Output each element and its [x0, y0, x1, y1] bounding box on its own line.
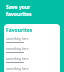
staticText: something here	[6, 47, 29, 51]
staticText: something here	[6, 37, 29, 41]
staticText: Favourites	[6, 27, 33, 34]
staticText: something here	[6, 67, 29, 71]
staticText: Save your	[6, 4, 31, 11]
staticText: something here	[6, 57, 29, 61]
staticText: favourites	[6, 11, 32, 18]
